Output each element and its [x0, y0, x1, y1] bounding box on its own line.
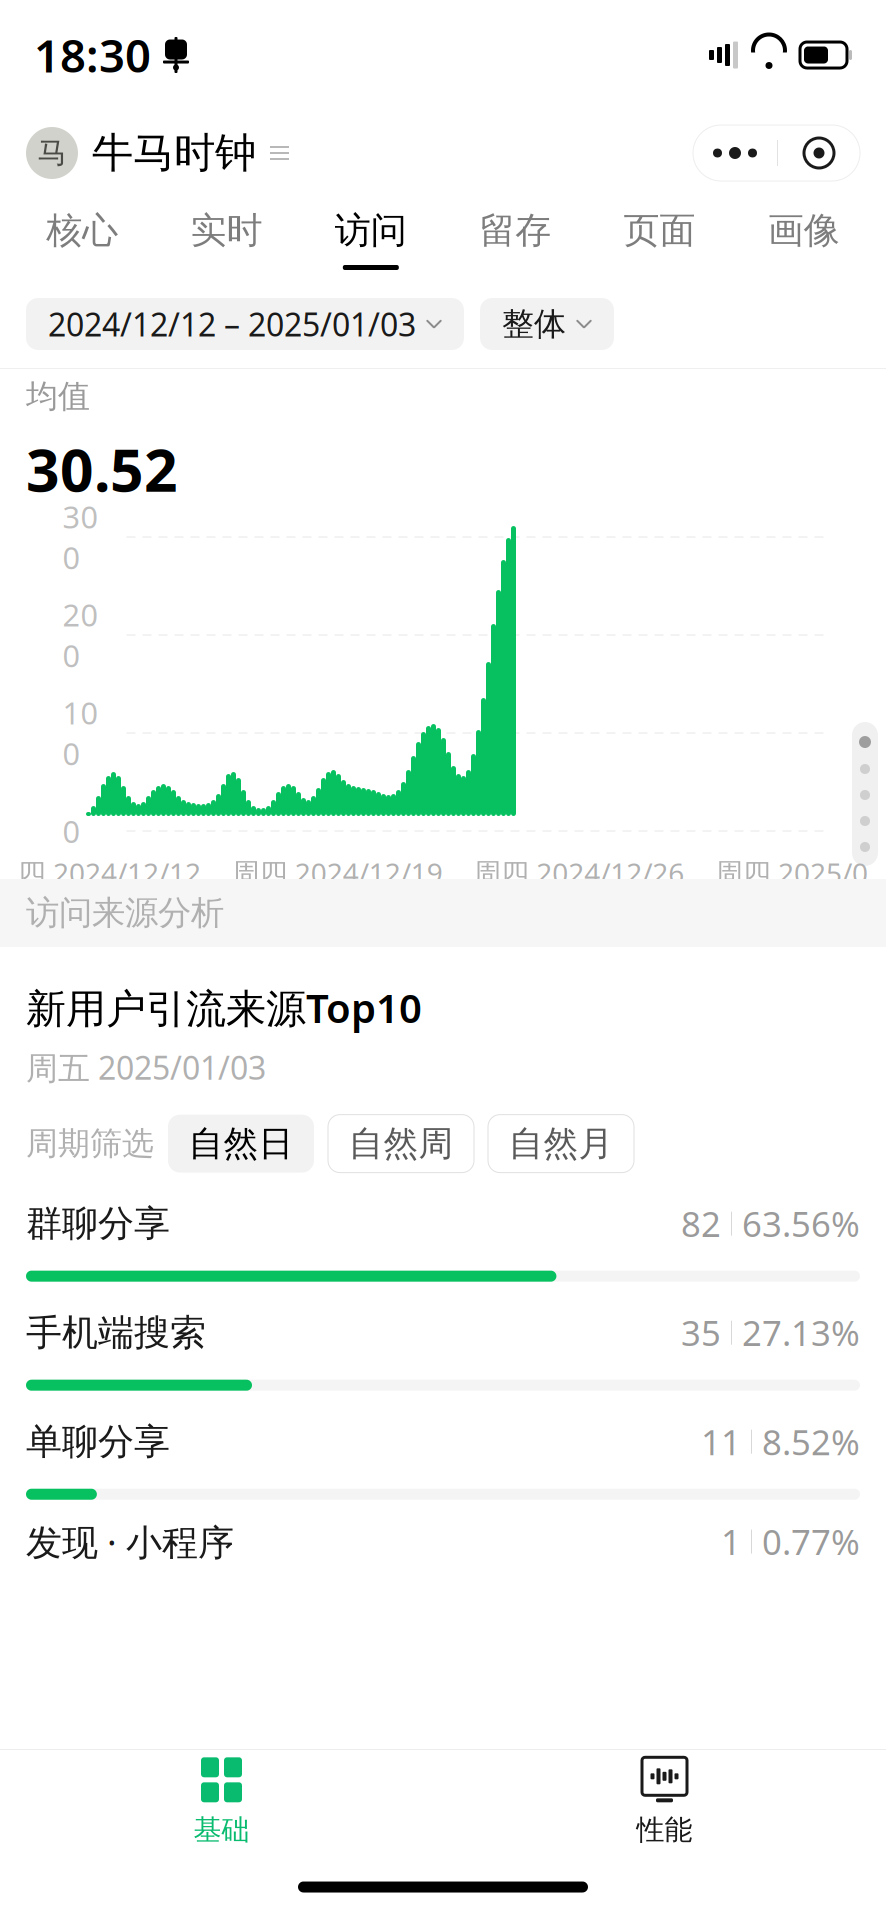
staticText: 18:30 [34, 25, 151, 85]
staticText: 单聊分享 [26, 1420, 170, 1464]
staticText: 11 [701, 1419, 741, 1465]
staticText: 63.56% [742, 1201, 860, 1247]
staticText: 马 [37, 135, 66, 171]
staticText: 牛马时钟 [92, 128, 256, 178]
staticText: 手机端搜索 [26, 1311, 206, 1355]
staticText: 0.77% [762, 1519, 860, 1565]
staticText: 周期筛选 [26, 1124, 154, 1163]
button[interactable]: 画像 [732, 196, 876, 280]
staticText: 画像 [768, 208, 840, 253]
staticText: 82 [681, 1201, 721, 1247]
button[interactable]: 核心 [10, 196, 154, 280]
staticText: 自然月 [508, 1122, 613, 1165]
staticText: 新用户引流来源Top10 [26, 981, 422, 1034]
staticText: 整体 [502, 304, 566, 344]
staticText: 自然周 [348, 1122, 453, 1165]
staticText: 1 [721, 1519, 741, 1565]
staticText: 周四 2025/0 [715, 854, 868, 891]
button[interactable]: 整体 [480, 298, 614, 350]
staticText: 群聊分享 [26, 1201, 170, 1246]
staticText: 访问 [335, 208, 407, 253]
button[interactable]: 基础 [0, 1750, 443, 1854]
staticText: 自然日 [188, 1122, 293, 1165]
staticText: 0 [62, 811, 80, 851]
staticText: 基础 [193, 1813, 249, 1847]
button[interactable]: 自然月 [488, 1115, 634, 1173]
staticText: 访问来源分析 [26, 892, 224, 933]
staticText: 四 2024/12/12 [18, 854, 201, 891]
button[interactable]: More [693, 125, 777, 181]
staticText: 300 [62, 496, 98, 578]
staticText: 周五 2025/01/03 [26, 1046, 266, 1089]
staticText: 2024/12/12 – 2025/01/03 [48, 303, 416, 345]
button[interactable]: 自然日 [168, 1115, 314, 1173]
button[interactable]: Close [778, 125, 860, 181]
button[interactable]: 2024/12/12 – 2025/01/03 [26, 298, 464, 350]
button[interactable]: 实时 [154, 196, 299, 280]
staticText: 留存 [479, 208, 551, 253]
staticText: 均值 [26, 377, 90, 416]
staticText: 200 [62, 594, 98, 676]
staticText: 周四 2024/12/19 [232, 854, 443, 891]
staticText: 30.52 [26, 430, 178, 508]
button[interactable]: 马 [26, 127, 289, 179]
button[interactable]: 性能 [443, 1750, 886, 1854]
staticText: 8.52% [762, 1419, 860, 1465]
staticText: 100 [62, 692, 98, 774]
staticText: 35 [681, 1310, 721, 1356]
staticText: 页面 [623, 208, 695, 253]
staticText: 核心 [46, 208, 118, 253]
staticText: 发现 · 小程序 [26, 1518, 234, 1565]
button[interactable]: 留存 [443, 196, 587, 280]
button[interactable]: 访问 [299, 196, 443, 280]
staticText: 27.13% [742, 1310, 860, 1356]
staticText: 性能 [636, 1813, 692, 1847]
button[interactable]: 页面 [587, 196, 732, 280]
staticText: 周四 2024/12/26 [473, 854, 684, 891]
button[interactable]: 自然周 [328, 1115, 474, 1173]
staticText: 实时 [190, 208, 262, 253]
